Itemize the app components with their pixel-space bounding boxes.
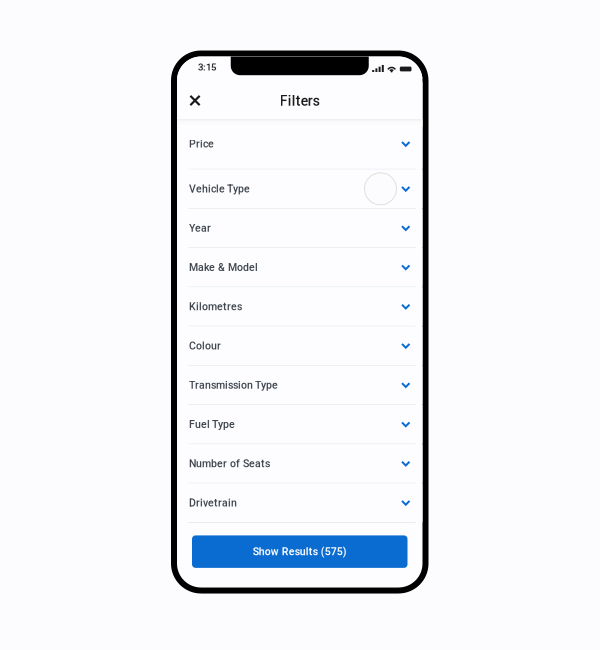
button[interactable]: Colour: [177, 327, 422, 365]
staticText: Kilometres: [189, 300, 242, 313]
button[interactable]: Transmission Type: [177, 366, 422, 404]
button[interactable]: Kilometres: [177, 287, 422, 326]
staticText: Transmission Type: [189, 379, 278, 391]
staticText: Drivetrain: [189, 497, 237, 509]
staticText: Year: [189, 222, 211, 234]
staticText: Make & Model: [189, 261, 258, 273]
staticText: Colour: [189, 340, 221, 352]
staticText: Number of Seats: [189, 457, 270, 470]
button[interactable]: Fuel Type: [177, 405, 422, 444]
button[interactable]: Number of Seats: [177, 444, 422, 483]
button[interactable]: Show Results (575): [192, 535, 407, 568]
button[interactable]: Close: [181, 87, 208, 114]
staticText: Show Results (575): [253, 545, 347, 558]
button[interactable]: Vehicle Type: [177, 170, 422, 208]
staticText: Price: [189, 138, 214, 150]
button[interactable]: Drivetrain: [177, 484, 422, 522]
button[interactable]: Year: [177, 209, 422, 247]
staticText: 3:15: [198, 61, 216, 73]
staticText: Filters: [280, 93, 320, 109]
staticText: Fuel Type: [189, 418, 235, 430]
staticText: Vehicle Type: [189, 183, 250, 195]
button[interactable]: Price: [177, 119, 422, 169]
button[interactable]: Make & Model: [177, 248, 422, 287]
